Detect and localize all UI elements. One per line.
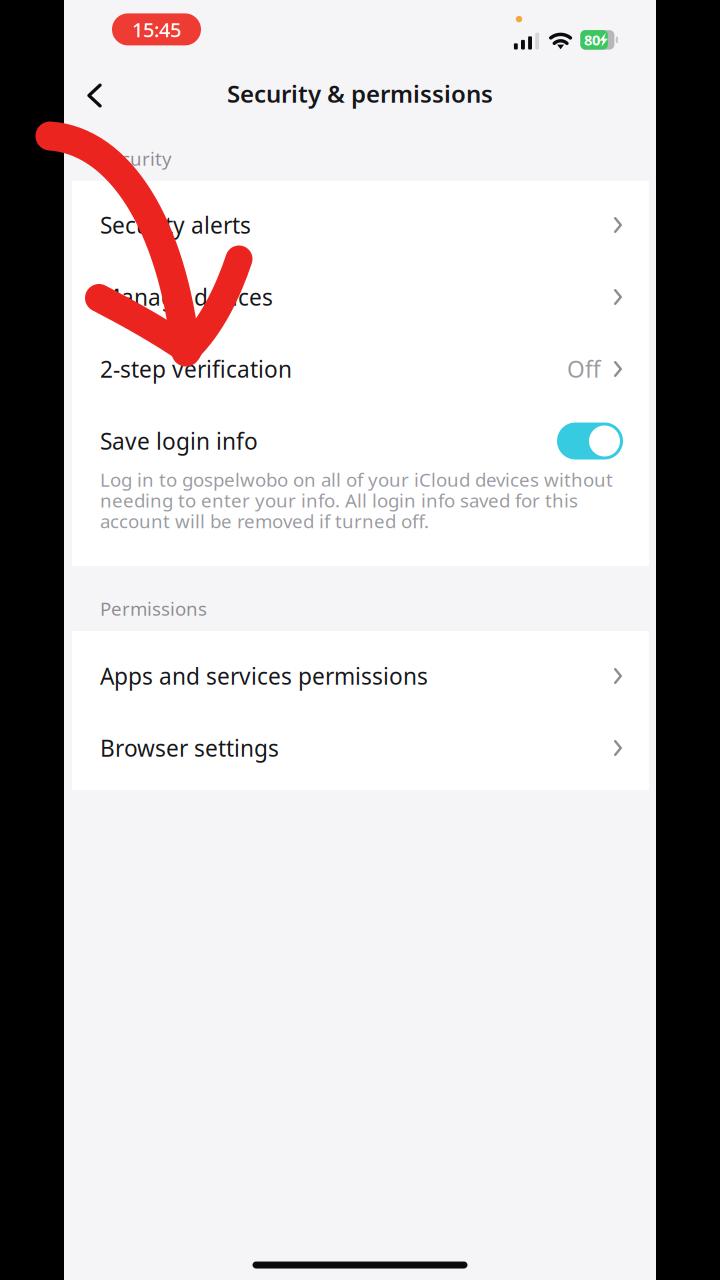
staticText: Apps and services permissions (100, 661, 428, 691)
button[interactable]: Browser settings (72, 712, 649, 784)
button[interactable]: Security alerts (72, 189, 649, 261)
button[interactable]: Save login info (557, 422, 623, 459)
staticText: Log in to gospelwobo on all of your iClo… (100, 467, 613, 533)
staticText: Security (100, 146, 172, 171)
button[interactable]: Manage devices (72, 261, 649, 333)
staticText: Security alerts (100, 210, 251, 240)
staticText: 80 (584, 30, 600, 50)
staticText: Security & permissions (227, 78, 493, 109)
staticText: Off (567, 354, 601, 384)
button[interactable]: 2-step verification (72, 333, 649, 405)
staticText: Permissions (100, 596, 207, 621)
staticText: Save login info (100, 426, 258, 456)
button[interactable]: Apps and services permissions (72, 640, 649, 712)
staticText: Manage devices (100, 282, 273, 312)
staticText: Browser settings (100, 733, 279, 763)
button[interactable]: Back (69, 70, 119, 120)
staticText: 2-step verification (100, 354, 292, 384)
staticText: 15:45 (132, 16, 181, 43)
